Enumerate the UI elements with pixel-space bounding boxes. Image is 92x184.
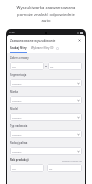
staticText: Segmentacja [10, 73, 27, 77]
button[interactable]: Do [48, 62, 82, 70]
staticText: Zakres cenowy [10, 56, 29, 60]
staticText: Szukaj filtry [10, 46, 27, 50]
staticText: 11:45 [9, 31, 15, 34]
button[interactable]: Zamknij [77, 38, 82, 43]
button[interactable]: Do [47, 164, 82, 172]
button[interactable]: Szukaj filtry [10, 46, 27, 53]
staticText: Od [12, 167, 42, 170]
staticText: Rodzaj paliwa [10, 141, 28, 145]
button[interactable]: Wybierz [10, 130, 82, 138]
button[interactable]: Wybierz [10, 147, 82, 155]
button[interactable]: Wybierz [10, 96, 82, 104]
staticText: Marka [10, 90, 19, 94]
staticText: Do [49, 167, 80, 170]
staticText: Model [10, 107, 18, 111]
button[interactable]: wybierz zakres lat [62, 159, 82, 162]
staticText: Wybierz [12, 150, 77, 153]
staticText: Wybierz [12, 133, 77, 136]
staticText: Wyszukiwarka zaawansowana pomoże znaleźć… [3, 5, 89, 23]
staticText: Od [12, 65, 42, 68]
staticText: Wybierz [12, 99, 77, 102]
staticText: Wybrane filtry (0) [31, 46, 54, 50]
button[interactable]: Od [10, 62, 44, 70]
staticText: Zaawansowane wyszukiwanie [10, 39, 77, 43]
staticText: Do [50, 65, 80, 68]
button[interactable]: Od [10, 164, 44, 172]
staticText: Typ nadwozia [10, 124, 28, 128]
staticText: Wybierz [12, 116, 77, 119]
button[interactable]: Wybierz [10, 113, 82, 121]
button[interactable]: Wybrane filtry (0) [31, 46, 59, 53]
button[interactable]: Wybierz [10, 79, 82, 87]
staticText: Rok produkcji [10, 158, 29, 162]
staticText: Wybierz [12, 82, 77, 85]
